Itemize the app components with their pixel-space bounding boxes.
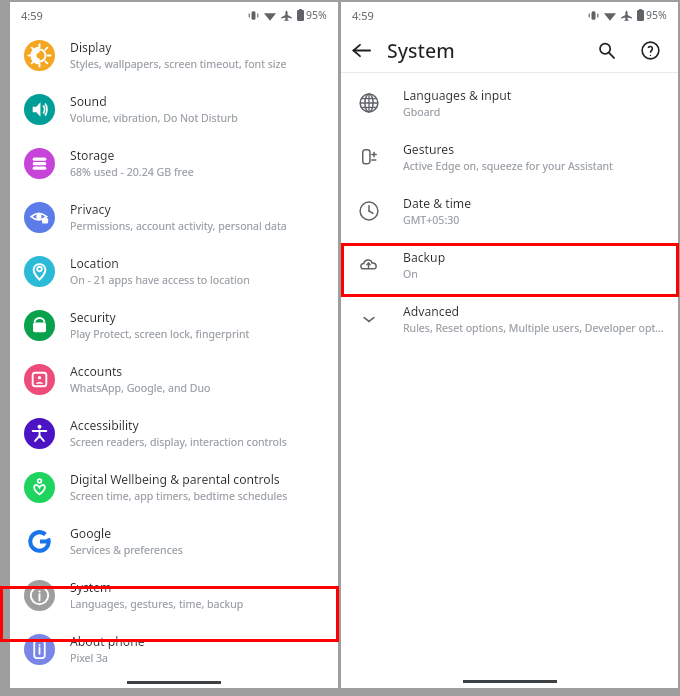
staticText: Digital Wellbeing & parental controls — [70, 471, 280, 488]
staticText: 68% used - 20.24 GB free — [70, 165, 194, 179]
staticText: Rules, Reset options, Multiple users, De… — [403, 321, 664, 335]
button[interactable]: Languages & input — [341, 76, 678, 130]
staticText: 95% — [646, 8, 667, 22]
staticText: Styles, wallpapers, screen timeout, font… — [70, 57, 287, 71]
staticText: GMT+05:30 — [403, 213, 460, 227]
button[interactable]: Advanced — [341, 292, 678, 346]
staticText: Advanced — [403, 303, 460, 320]
staticText: Date & time — [403, 195, 472, 212]
staticText: 4:59 — [21, 8, 43, 23]
button[interactable]: Storage — [10, 136, 338, 190]
button[interactable]: Google — [10, 514, 338, 568]
staticText: Security — [70, 309, 116, 326]
button[interactable]: Gestures — [341, 130, 678, 184]
staticText: Display — [70, 39, 112, 56]
button[interactable]: About phone — [10, 622, 338, 676]
button[interactable]: Accounts — [10, 352, 338, 406]
staticText: Languages & input — [403, 87, 512, 104]
staticText: Languages, gestures, time, backup — [70, 597, 244, 611]
staticText: System — [70, 579, 112, 596]
staticText: Accessibility — [70, 417, 139, 434]
staticText: 95% — [306, 8, 327, 22]
staticText: Storage — [70, 147, 115, 164]
button[interactable]: Back — [341, 30, 381, 70]
button[interactable]: Sound — [10, 82, 338, 136]
staticText: Services & preferences — [70, 543, 183, 557]
staticText: On — [403, 267, 418, 281]
staticText: Screen readers, display, interaction con… — [70, 435, 287, 449]
staticText: Volume, vibration, Do Not Disturb — [70, 111, 238, 125]
button[interactable]: Accessibility — [10, 406, 338, 460]
button[interactable]: Security — [10, 298, 338, 352]
staticText: Gboard — [403, 105, 441, 119]
staticText: Accounts — [70, 363, 123, 380]
button[interactable]: Date & time — [341, 184, 678, 238]
staticText: Permissions, account activity, personal … — [70, 219, 287, 233]
staticText: Backup — [403, 249, 446, 266]
button[interactable]: Display — [10, 28, 338, 82]
staticText: WhatsApp, Google, and Duo — [70, 381, 211, 395]
button[interactable]: System — [10, 568, 338, 622]
button[interactable]: Help — [630, 30, 670, 70]
staticText: Gestures — [403, 141, 455, 158]
staticText: Sound — [70, 93, 107, 110]
staticText: Location — [70, 255, 119, 272]
staticText: Privacy — [70, 201, 111, 218]
staticText: System — [387, 37, 455, 64]
button[interactable]: Search — [586, 30, 626, 70]
staticText: Google — [70, 525, 112, 542]
staticText: About phone — [70, 633, 145, 650]
button[interactable]: Privacy — [10, 190, 338, 244]
button[interactable]: Location — [10, 244, 338, 298]
staticText: Screen time, app timers, bedtime schedul… — [70, 489, 288, 503]
button[interactable]: Backup — [341, 238, 678, 292]
button[interactable]: Digital Wellbeing & parental controls — [10, 460, 338, 514]
staticText: Play Protect, screen lock, fingerprint — [70, 327, 250, 341]
staticText: Pixel 3a — [70, 651, 108, 665]
staticText: Active Edge on, squeeze for your Assista… — [403, 159, 613, 173]
staticText: 4:59 — [352, 8, 374, 23]
staticText: On - 21 apps have access to location — [70, 273, 250, 287]
